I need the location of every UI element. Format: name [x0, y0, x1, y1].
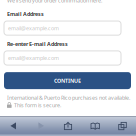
staticText: Re-enter E-mail Address: [7, 40, 68, 47]
staticText: We'll send your order confirmation here.: [7, 0, 102, 4]
button[interactable]: Forward: [27, 116, 54, 136]
button[interactable]: Back: [0, 116, 27, 136]
staticText: CONTINUE: [54, 77, 81, 84]
staticText: email@example.com: [8, 54, 59, 62]
button[interactable]: CONTINUE: [4, 72, 131, 89]
button[interactable]: Tabs: [109, 116, 136, 136]
staticText: email@example.com: [8, 25, 59, 32]
button[interactable]: Bookmarks: [82, 116, 109, 136]
staticText: Email Address: [7, 10, 44, 18]
staticText: This form is secure.: [14, 102, 61, 109]
button[interactable]: Share: [54, 116, 82, 136]
staticText: International & Puerto Rico purchases no…: [7, 94, 130, 101]
